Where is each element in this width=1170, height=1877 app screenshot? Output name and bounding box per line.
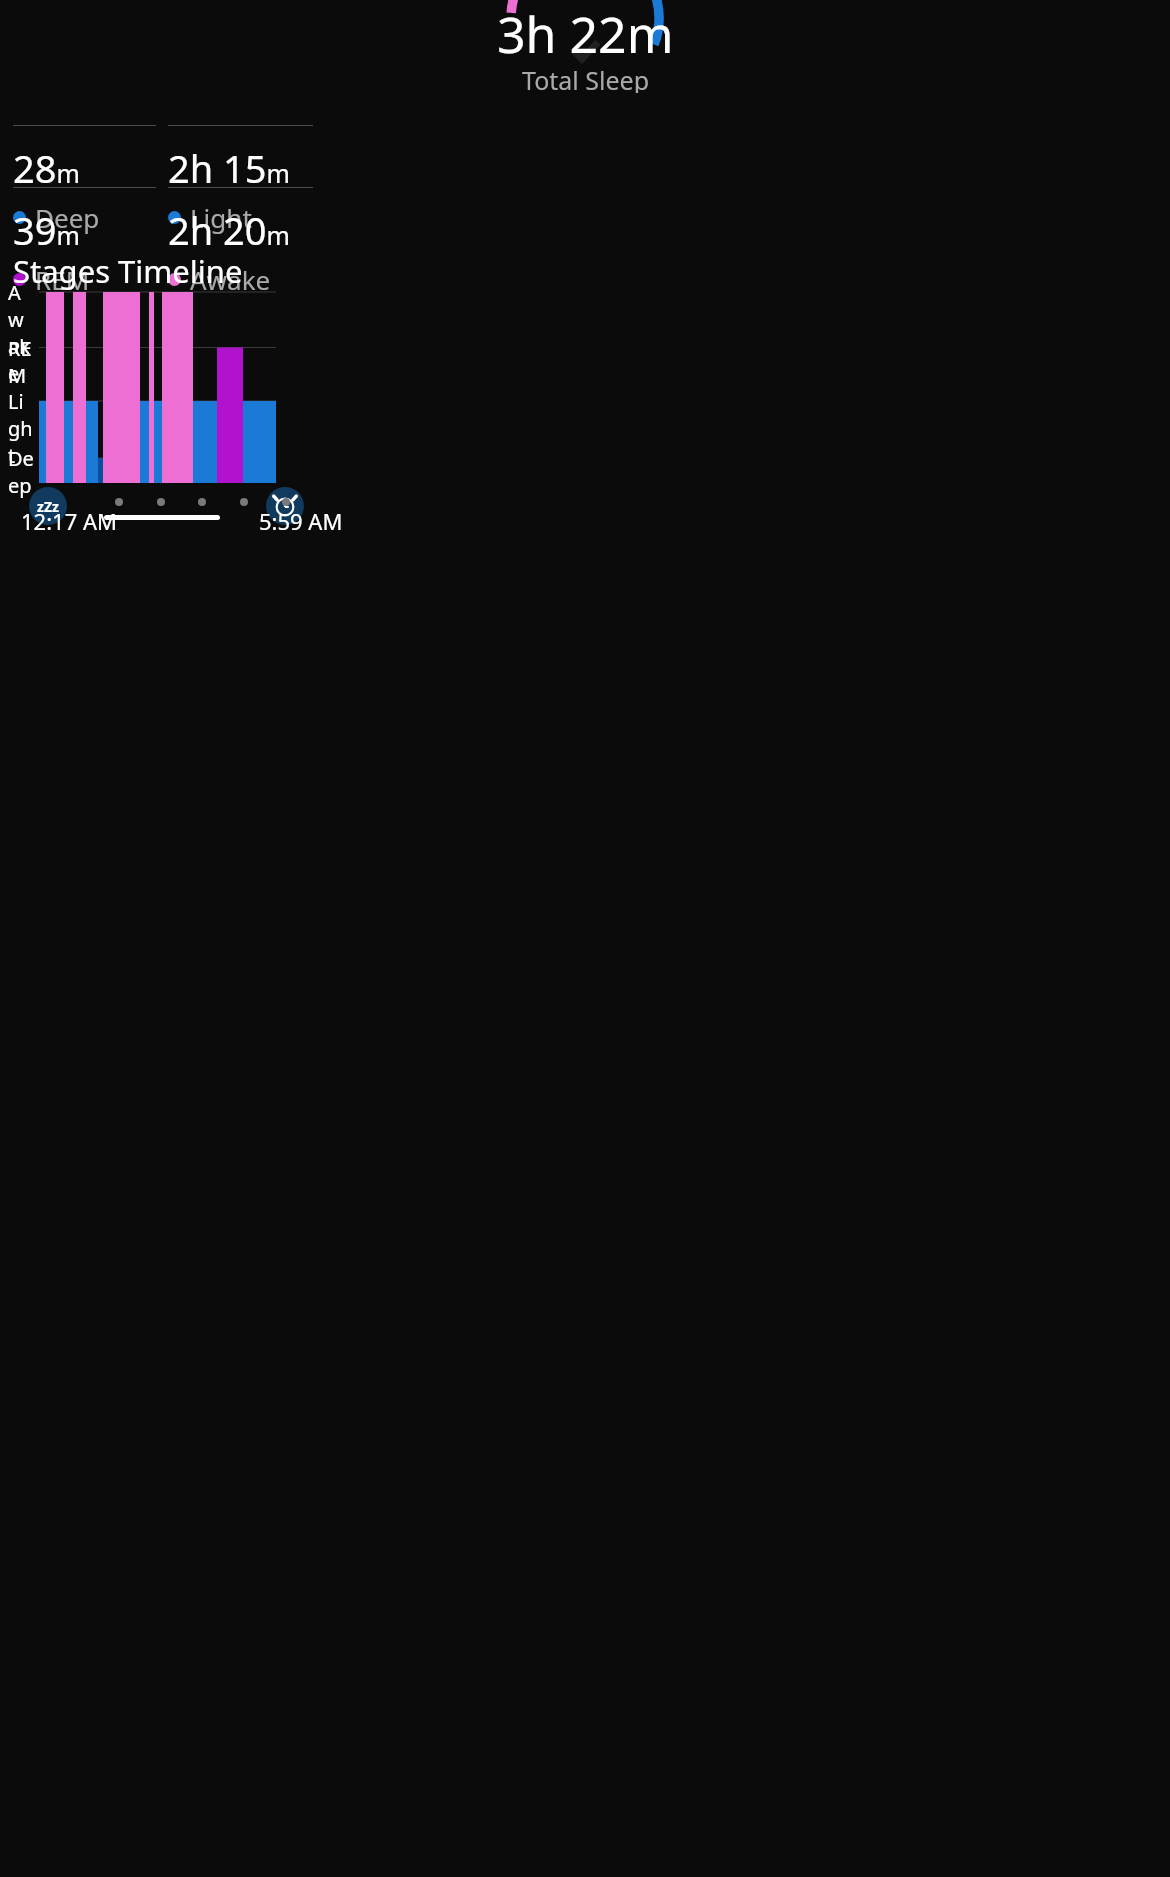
staticText: 12:17 AM bbox=[21, 506, 117, 536]
staticText: 2h 20m bbox=[168, 204, 290, 256]
button[interactable]: 2h 20m bbox=[168, 187, 313, 297]
staticText: 28m bbox=[13, 142, 80, 194]
button[interactable]: 2h 15m bbox=[168, 125, 313, 235]
staticText: Awake bbox=[190, 262, 271, 297]
staticText: Stages Timeline bbox=[13, 250, 243, 292]
staticText: 3h 22m bbox=[497, 0, 674, 68]
staticText: 39m bbox=[13, 204, 80, 256]
staticText: Deep bbox=[8, 445, 34, 499]
staticText: 5:59 AM bbox=[259, 506, 343, 536]
button[interactable]: 28m bbox=[13, 125, 156, 235]
staticText: 2h 15m bbox=[168, 142, 290, 194]
button[interactable]: Sleep start bbox=[29, 487, 67, 525]
staticText: REM bbox=[35, 262, 90, 297]
staticText: Light bbox=[8, 388, 34, 469]
staticText: Deep bbox=[35, 200, 100, 235]
staticText: Awake bbox=[8, 279, 34, 387]
staticText: REM bbox=[8, 335, 34, 389]
button[interactable]: 39m bbox=[13, 187, 156, 297]
staticText: Total Sleep bbox=[522, 63, 650, 93]
staticText: Light bbox=[190, 200, 252, 235]
staticText: zZz bbox=[37, 497, 59, 516]
button[interactable]: Alarm bbox=[266, 487, 304, 525]
